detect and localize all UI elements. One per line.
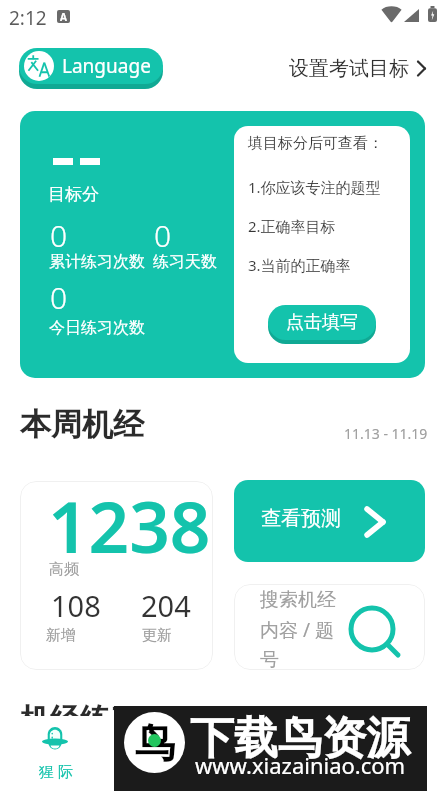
button[interactable]: Language <box>19 48 163 84</box>
button[interactable]: 设置考试目标 <box>289 52 426 85</box>
staticText: 机经练习 <box>20 701 140 739</box>
staticText: 0 <box>50 215 68 256</box>
staticText: A <box>60 10 67 23</box>
staticText: 查看预测 <box>261 506 341 531</box>
staticText: 新增 <box>46 626 76 645</box>
staticText: 鸟 <box>135 718 175 768</box>
staticText: 2:12 <box>9 5 47 31</box>
staticText: 3.当前的正确率 <box>248 255 351 275</box>
staticText: 0 <box>154 215 172 256</box>
staticText: 猩 际 <box>39 761 73 781</box>
staticText: 11.13 - 11.19 <box>344 424 428 443</box>
staticText: 108 <box>51 586 101 625</box>
button[interactable]: 猩 际 <box>27 720 89 780</box>
staticText: www.xiazainiao.com <box>195 750 406 780</box>
staticText: 练习天数 <box>153 252 217 272</box>
staticText: 2.正确率目标 <box>248 216 336 236</box>
staticText: 1.你应该专注的题型 <box>248 177 381 197</box>
staticText: 填目标分后可查看： <box>248 134 383 153</box>
staticText: 搜索机经内容 / 题号 <box>260 588 344 670</box>
staticText: 1238 <box>48 481 211 574</box>
staticText: 0 <box>50 277 68 318</box>
staticText: Language <box>62 53 151 79</box>
staticText: 高频 <box>49 560 79 579</box>
staticText: 本周机经 <box>20 405 144 444</box>
staticText: 目标分 <box>48 184 99 205</box>
button[interactable]: 查看预测 <box>234 480 425 562</box>
staticText: 设置考试目标 <box>289 56 409 81</box>
button[interactable]: 点击填写 <box>268 305 376 340</box>
staticText: 今日练习次数 <box>49 318 145 338</box>
staticText: 204 <box>141 586 191 625</box>
staticText: 更新 <box>142 626 172 645</box>
staticText: 点击填写 <box>286 311 358 334</box>
staticText: 累计练习次数 <box>49 252 145 272</box>
button[interactable]: 搜索机经内容 / 题号 <box>234 584 425 670</box>
button[interactable]: 1238 <box>20 481 213 670</box>
staticText: 下载鸟资源 <box>190 711 410 766</box>
